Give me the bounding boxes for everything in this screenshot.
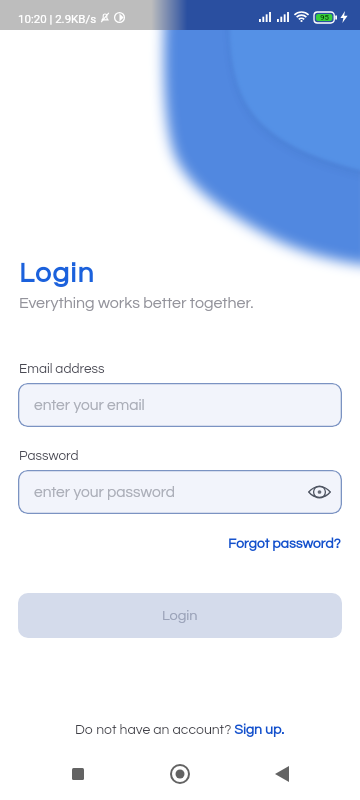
staticText: Do not have an account? Sign up. xyxy=(75,723,285,737)
other: Show password xyxy=(308,484,331,500)
staticText: Login xyxy=(162,608,198,623)
button[interactable]: Recents xyxy=(54,750,102,798)
button[interactable]: Do not have an account? Sign up. xyxy=(69,720,291,740)
staticText: 95 xyxy=(320,13,330,22)
staticText: Email address xyxy=(19,362,105,376)
staticText: Password xyxy=(19,449,79,463)
button[interactable]: enter your password xyxy=(18,470,342,514)
button[interactable]: Home xyxy=(156,750,204,798)
staticText: enter your email xyxy=(34,397,145,413)
button[interactable]: Forgot password? xyxy=(223,533,346,555)
staticText: enter your password xyxy=(34,484,176,500)
button[interactable]: Back xyxy=(258,750,306,798)
staticText: Forgot password? xyxy=(228,537,341,551)
staticText: 10:20 | 2.9KB/s xyxy=(18,12,97,25)
button[interactable]: Login xyxy=(18,593,342,638)
staticText: Everything works better together. xyxy=(19,295,254,311)
button[interactable]: enter your email xyxy=(18,383,342,427)
staticText: Login xyxy=(19,259,95,288)
